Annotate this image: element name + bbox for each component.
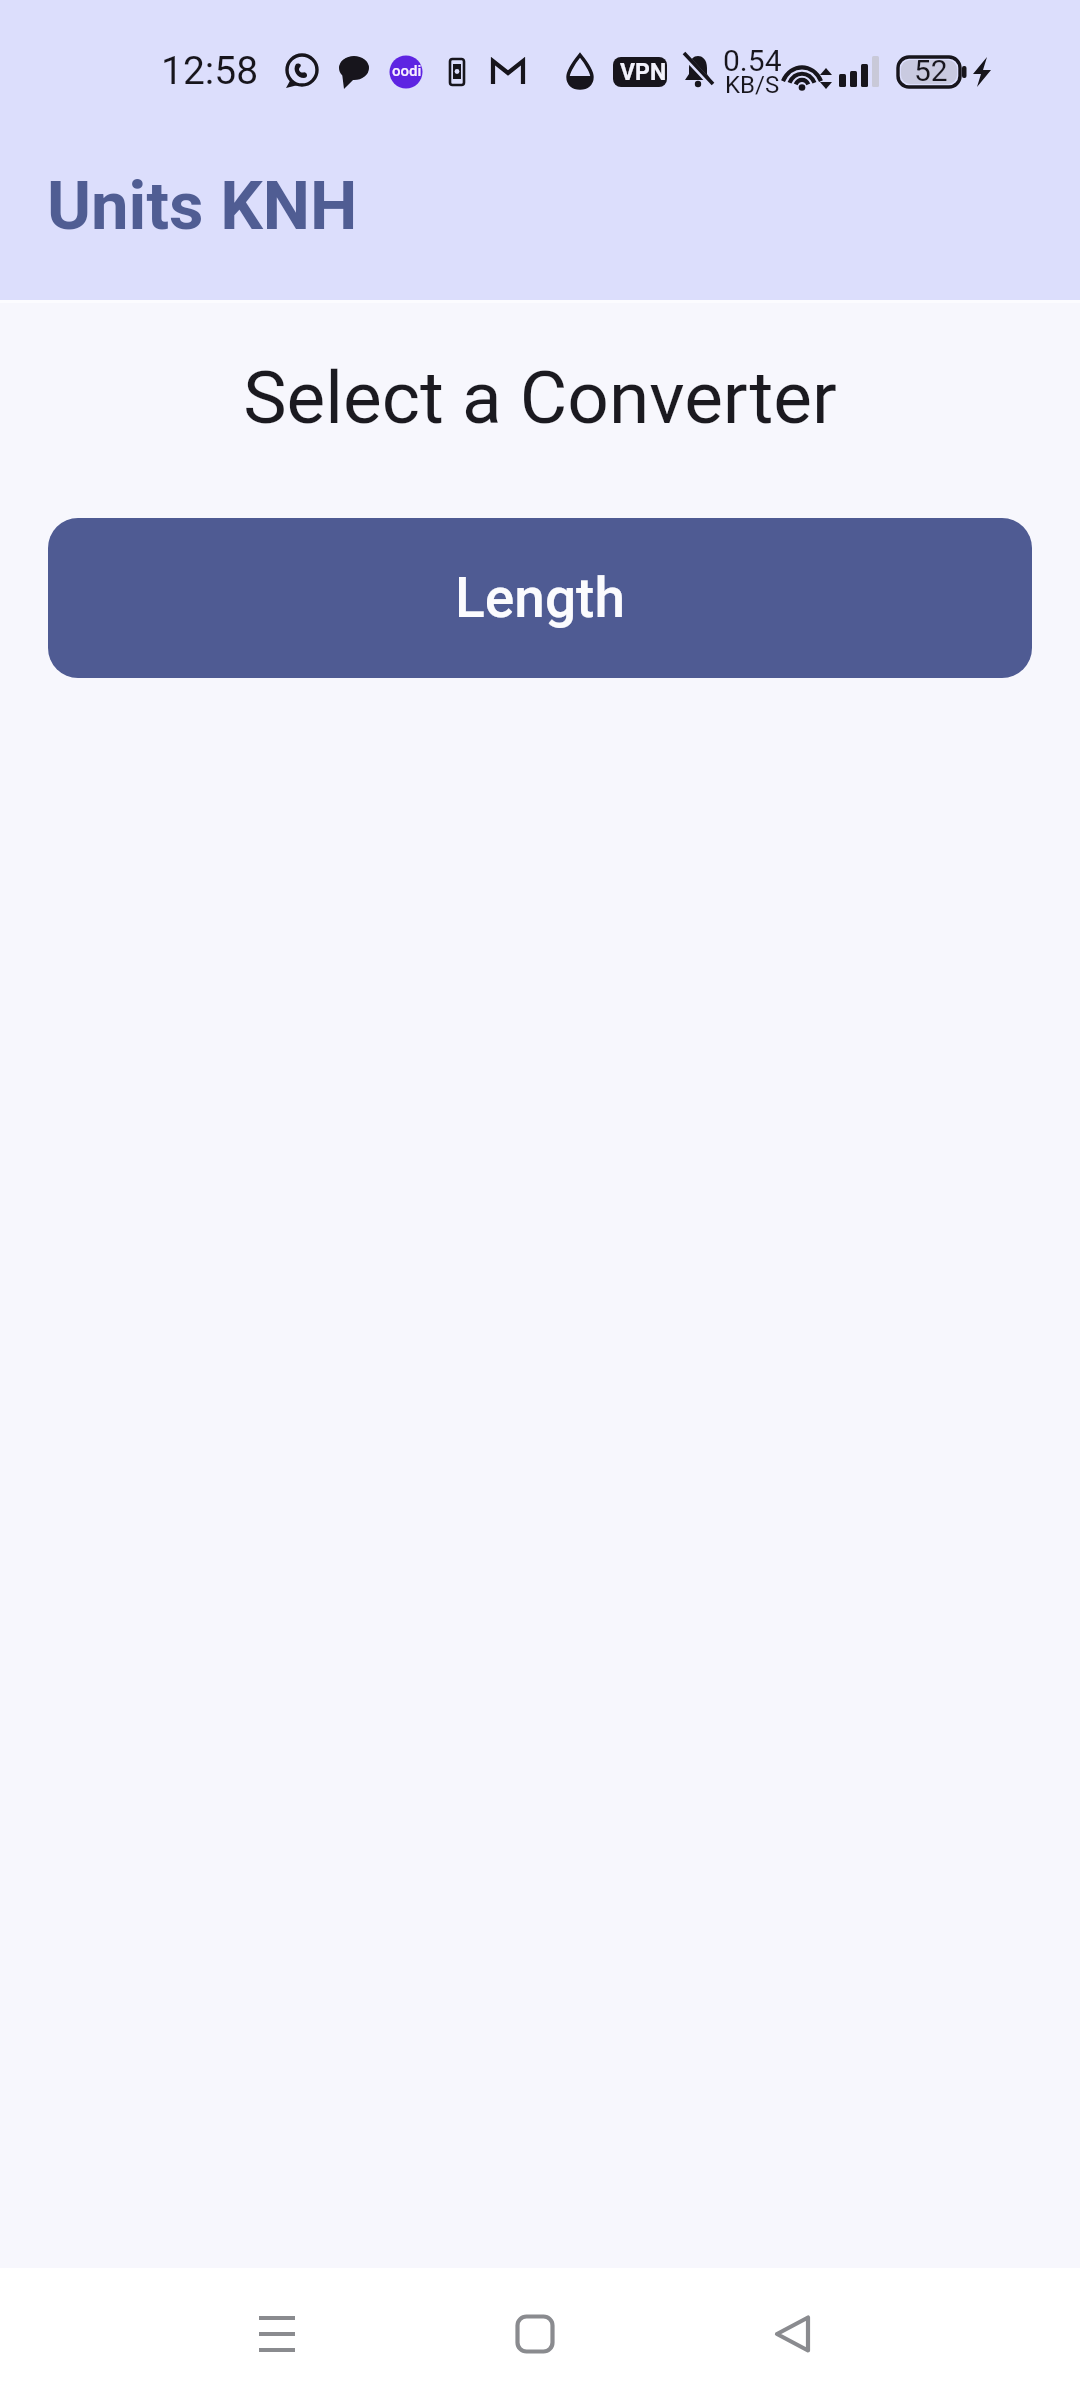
staticText: 0.54 <box>723 43 782 78</box>
staticText: 12:58 <box>161 48 259 94</box>
button[interactable]: Recent apps <box>187 2268 367 2400</box>
button[interactable]: Home <box>445 2268 625 2400</box>
staticText: Select a Converter <box>0 355 1080 441</box>
staticText: VPN <box>620 59 667 86</box>
staticText: Units KNH <box>47 167 358 246</box>
button[interactable]: Length <box>48 518 1032 678</box>
staticText: 52 <box>914 53 948 88</box>
button[interactable]: Back <box>703 2268 883 2400</box>
staticText: Length <box>455 566 625 630</box>
staticText: oodi <box>392 62 422 80</box>
staticText: KB/S <box>725 71 780 99</box>
